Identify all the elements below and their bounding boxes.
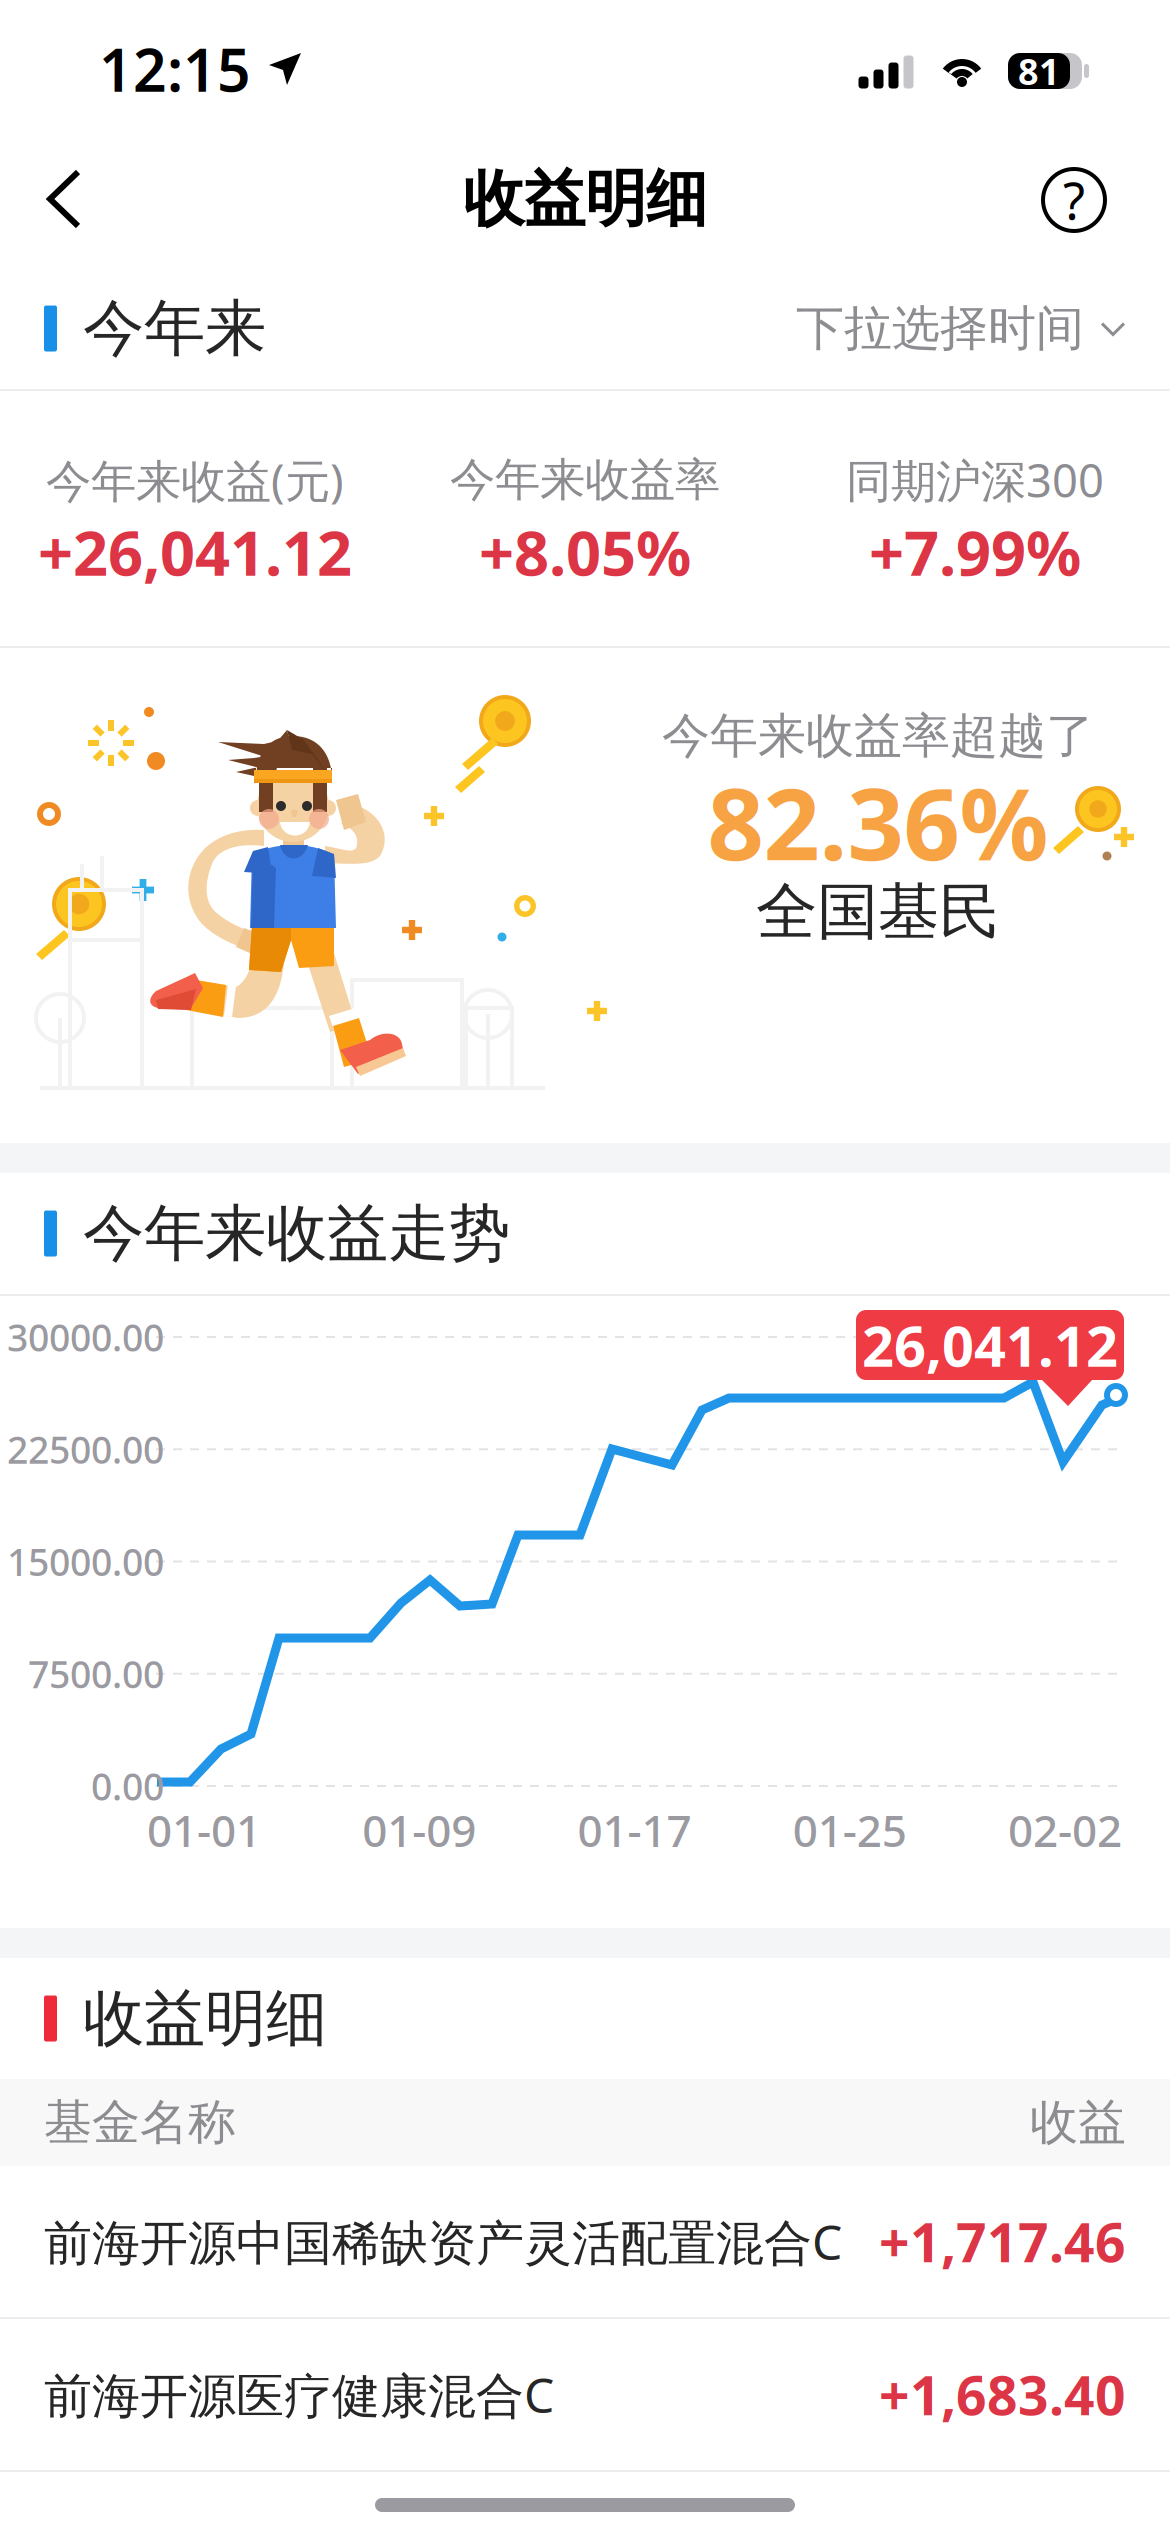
staticText: 22500.00: [7, 1424, 164, 1474]
staticText: 0.00: [91, 1761, 164, 1811]
staticText: +1,717.46: [879, 2206, 1126, 2277]
staticText: +7.99%: [869, 511, 1081, 593]
button[interactable]: 前海开源中国稀缺资产灵活配置混合C: [0, 2166, 1170, 2317]
staticText: 今年来收益(元): [46, 450, 344, 510]
staticText: +1,683.40: [879, 2359, 1126, 2430]
staticText: 前海开源医疗健康混合C: [44, 2363, 554, 2426]
staticText: 今年来收益走势: [83, 1196, 510, 1271]
button[interactable]: Help: [1024, 150, 1124, 250]
staticText: 02-02: [1008, 1801, 1122, 1859]
button[interactable]: 前海开源医疗健康混合C: [0, 2319, 1170, 2470]
staticText: 81: [1018, 47, 1060, 95]
staticText: ?: [1063, 166, 1085, 234]
button[interactable]: 下拉选择时间: [776, 277, 1126, 380]
staticText: 下拉选择时间: [796, 299, 1084, 358]
staticText: 收益明细: [83, 1981, 327, 2056]
staticText: 82.36%: [707, 756, 1048, 887]
staticText: 01-01: [147, 1801, 261, 1859]
staticText: 15000.00: [7, 1537, 164, 1586]
staticText: 前海开源中国稀缺资产灵活配置混合C: [44, 2210, 842, 2273]
staticText: 基金名称: [44, 2093, 236, 2152]
staticText: 全国基民: [756, 874, 1000, 950]
staticText: 7500.00: [28, 1649, 164, 1699]
staticText: 今年来收益率超越了: [662, 706, 1094, 765]
staticText: 今年来收益率: [450, 452, 720, 508]
staticText: 今年来: [83, 291, 266, 366]
staticText: 01-09: [362, 1801, 476, 1859]
staticText: 收益明细: [463, 161, 707, 237]
staticText: 30000.00: [7, 1312, 164, 1362]
staticText: 26,041.12: [862, 1308, 1118, 1382]
staticText: 01-17: [577, 1801, 691, 1859]
button[interactable]: Back: [16, 144, 112, 254]
staticText: 01-25: [793, 1801, 907, 1859]
staticText: +26,041.12: [38, 511, 352, 593]
staticText: 同期沪深300: [846, 450, 1104, 510]
staticText: +8.05%: [479, 511, 691, 593]
staticText: 12:15: [99, 30, 251, 108]
staticText: 收益: [1030, 2093, 1126, 2152]
